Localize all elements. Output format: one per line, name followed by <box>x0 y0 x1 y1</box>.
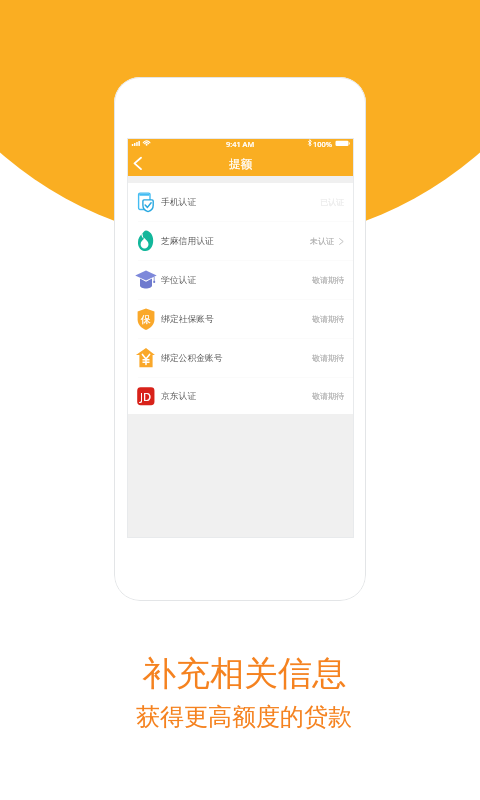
staticText: 绑定公积金账号 <box>161 353 223 364</box>
button[interactable]: 绑定公积金账号 <box>127 339 354 377</box>
staticText: 保 <box>141 313 151 326</box>
button[interactable]: 手机认证 <box>127 183 354 221</box>
staticText: 补充相关信息 <box>142 652 346 695</box>
staticText: 已认证 <box>320 197 344 207</box>
staticText: 敬请期待 <box>312 275 344 285</box>
staticText: 敬请期待 <box>312 391 344 401</box>
staticText: 敬请期待 <box>312 314 344 324</box>
button[interactable]: 保 <box>127 300 354 338</box>
staticText: 未认证 <box>310 236 334 246</box>
staticText: 100% <box>313 139 332 149</box>
button[interactable]: JD <box>127 378 354 414</box>
staticText: 获得更高额度的贷款 <box>136 702 352 732</box>
staticText: 敬请期待 <box>312 353 344 363</box>
staticText: 京东认证 <box>161 391 197 402</box>
staticText: 提额 <box>229 157 252 171</box>
staticText: 绑定社保账号 <box>161 314 214 325</box>
staticText: 学位认证 <box>161 275 197 286</box>
button[interactable]: 芝麻信用认证 <box>127 222 354 260</box>
staticText: 手机认证 <box>161 197 197 208</box>
staticText: 芝麻信用认证 <box>161 236 214 247</box>
button[interactable]: 学位认证 <box>127 261 354 299</box>
staticText: JD <box>140 389 152 404</box>
button[interactable]: Back <box>127 153 149 175</box>
staticText: 9:41 AM <box>226 139 255 149</box>
